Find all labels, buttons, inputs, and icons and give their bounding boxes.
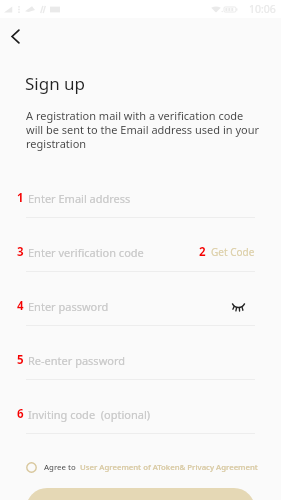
staticText: 10:06 xyxy=(249,2,276,16)
staticText: Enter Email address xyxy=(28,191,131,206)
button[interactable]: 3 xyxy=(0,243,281,272)
staticText: 1 xyxy=(17,190,24,206)
staticText: Re-enter password xyxy=(28,353,126,368)
staticText: 6 xyxy=(17,406,24,422)
button[interactable]: Show password xyxy=(227,298,249,316)
staticText: Agree to xyxy=(44,462,76,473)
staticText: Sign up xyxy=(25,72,86,95)
staticText: Enter verification code xyxy=(28,245,144,260)
staticText: Enter password xyxy=(28,299,109,314)
button[interactable]: 6 xyxy=(0,405,281,434)
button[interactable]: 5 xyxy=(0,351,281,380)
staticText: Get Code xyxy=(211,245,255,259)
staticText: Inviting code (optional) xyxy=(28,407,151,422)
button[interactable] xyxy=(26,488,255,500)
staticText: 2 xyxy=(199,244,206,260)
staticText: User Agreement of AToken& Privacy Agreem… xyxy=(80,462,258,473)
button[interactable]: 4 xyxy=(0,297,281,326)
staticText: 4 xyxy=(17,298,24,314)
button[interactable]: Back xyxy=(0,21,31,52)
staticText: 3 xyxy=(17,244,24,260)
button[interactable]: Agree to xyxy=(26,457,258,477)
staticText: A registration mail with a verification … xyxy=(26,108,260,151)
staticText: 5 xyxy=(17,352,24,368)
button[interactable]: 1 xyxy=(0,189,281,218)
